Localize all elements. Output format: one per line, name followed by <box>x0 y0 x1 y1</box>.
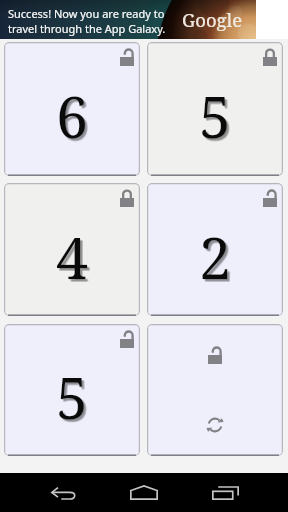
staticText: 6 <box>58 79 90 157</box>
button[interactable]: Home <box>110 473 178 512</box>
button[interactable]: Back <box>30 473 98 512</box>
staticText: 4 <box>58 221 90 299</box>
staticText: 5 <box>202 80 234 158</box>
staticText: 2 <box>202 221 234 299</box>
staticText: 2 <box>201 220 233 298</box>
staticText: 6 <box>59 80 91 158</box>
staticText: travel through the App Galaxy. <box>8 21 166 36</box>
staticText: 6 <box>56 77 88 155</box>
staticText: Success! Now you are ready to <box>8 6 165 21</box>
button[interactable]: 5 <box>4 324 140 456</box>
staticText: 5 <box>58 361 90 439</box>
staticText: 4 <box>59 221 91 299</box>
button[interactable]: Recent apps <box>191 473 259 512</box>
button[interactable]: 2 <box>147 183 283 316</box>
button[interactable]: 6 <box>4 42 140 176</box>
staticText: 4 <box>57 219 89 297</box>
staticText: 5 <box>59 361 91 439</box>
staticText: 2 <box>199 218 231 296</box>
staticText: 5 <box>199 77 231 155</box>
staticText: 5 <box>201 80 233 158</box>
staticText: 5 <box>59 360 91 438</box>
staticText: Google <box>182 7 243 32</box>
staticText: 2 <box>201 221 233 299</box>
staticText: 5 <box>57 359 89 437</box>
button[interactable]: Roll dice <box>147 324 283 456</box>
button[interactable]: Advertisement <box>0 0 256 39</box>
staticText: 4 <box>59 220 91 298</box>
staticText: 4 <box>56 218 88 296</box>
staticText: 2 <box>200 219 232 297</box>
button[interactable]: 5 <box>147 42 283 176</box>
staticText: 5 <box>58 360 90 438</box>
staticText: 6 <box>57 78 89 156</box>
staticText: 6 <box>59 79 91 157</box>
staticText: 4 <box>58 220 90 298</box>
staticText: 2 <box>202 220 234 298</box>
staticText: 5 <box>200 78 232 156</box>
staticText: 5 <box>202 79 234 157</box>
button[interactable]: 4 <box>4 183 140 316</box>
staticText: 5 <box>201 79 233 157</box>
staticText: 5 <box>56 358 88 436</box>
staticText: 6 <box>58 80 90 158</box>
